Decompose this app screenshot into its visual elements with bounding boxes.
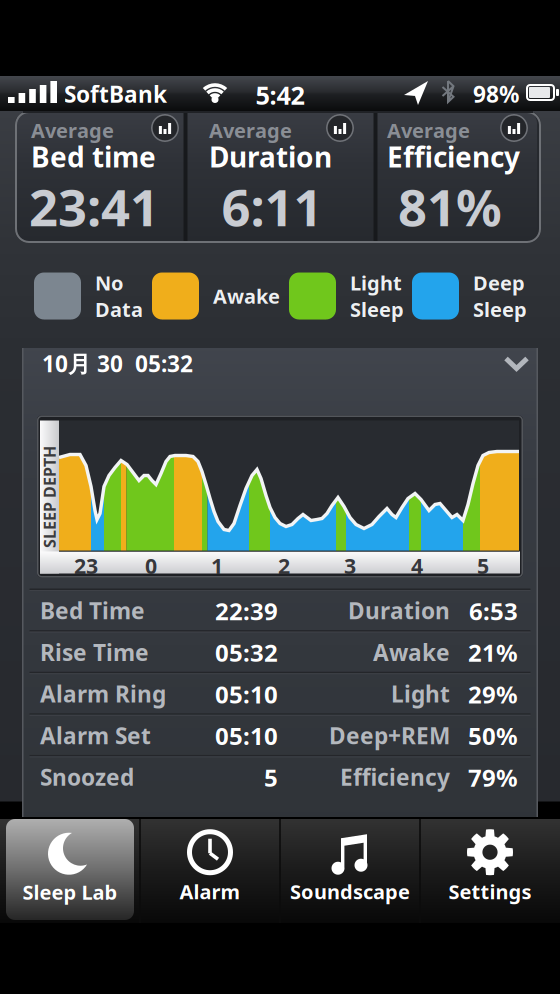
staticText: 81% [398, 173, 502, 240]
staticText: SoftBank [64, 79, 167, 109]
staticText: Average [209, 117, 292, 144]
staticText: 05:32 [215, 637, 278, 668]
staticText: 22:39 [215, 595, 278, 627]
staticText: 6:53 [469, 595, 518, 627]
staticText: Soundscape [290, 878, 410, 905]
staticText: Sleep [473, 296, 527, 323]
staticText: Data [95, 296, 143, 323]
staticText: Sleep Lab [22, 879, 117, 905]
staticText: Average [387, 117, 470, 144]
staticText: Sleep [350, 296, 404, 323]
staticText: 21% [468, 637, 518, 668]
staticText: 50% [468, 720, 518, 752]
button[interactable]: History chart [151, 114, 179, 142]
staticText: 5 [264, 761, 278, 793]
staticText: 05:10 [215, 720, 278, 752]
staticText: Alarm [179, 878, 240, 905]
staticText: Efficiency [387, 138, 520, 175]
staticText: 29% [468, 678, 518, 710]
staticText: 5 [477, 551, 489, 580]
staticText: Average [31, 117, 114, 144]
staticText: 79% [468, 761, 518, 793]
staticText: SLEEP DEPTH [0, 486, 100, 508]
staticText: Duration [209, 138, 332, 175]
staticText: 3 [344, 551, 356, 580]
staticText: Light [350, 269, 402, 296]
staticText: Efficiency [340, 762, 450, 792]
staticText: Rise Time [40, 637, 149, 667]
staticText: Awake [213, 283, 280, 309]
staticText: 05:10 [215, 678, 278, 710]
button[interactable]: Settings [420, 817, 560, 923]
staticText: 0 [145, 551, 157, 580]
staticText: 2 [278, 551, 290, 580]
staticText: 1 [211, 551, 223, 580]
staticText: 23:41 [29, 173, 159, 240]
button[interactable]: Alarm [140, 817, 280, 923]
staticText: Deep+REM [329, 720, 450, 750]
staticText: 10月 30 05:32 [42, 348, 193, 379]
staticText: Duration [348, 595, 450, 626]
staticText: Bed time [31, 138, 156, 175]
staticText: Awake [373, 637, 450, 667]
staticText: Settings [448, 878, 531, 905]
staticText: 23 [74, 551, 98, 580]
staticText: 5:42 [255, 78, 304, 112]
button[interactable]: Sleep Lab [0, 817, 140, 923]
staticText: Alarm Ring [40, 679, 166, 709]
staticText: 98% [473, 79, 519, 109]
staticText: Alarm Set [40, 720, 151, 750]
staticText: Light [391, 679, 450, 709]
staticText: No [95, 269, 124, 296]
staticText: 4 [411, 551, 423, 580]
staticText: Snoozed [40, 762, 134, 792]
staticText: Deep [473, 269, 525, 296]
button[interactable]: History chart [326, 114, 354, 142]
staticText: Bed Time [40, 595, 145, 626]
button[interactable]: 10月 30 05:32 [22, 332, 538, 390]
staticText: 6:11 [221, 173, 322, 240]
button[interactable]: Soundscape [280, 817, 420, 923]
button[interactable]: History chart [500, 114, 528, 142]
